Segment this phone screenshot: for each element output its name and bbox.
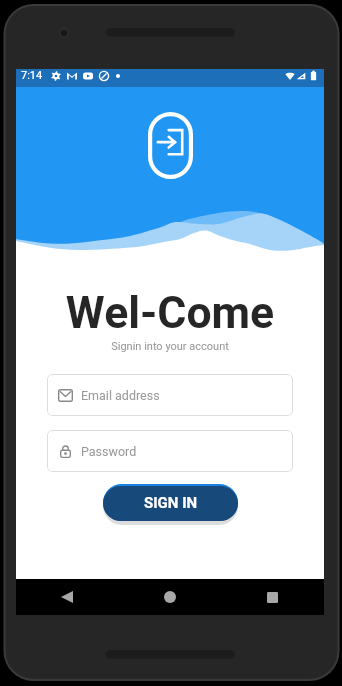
button[interactable]: Recent apps bbox=[221, 579, 324, 615]
staticText: Email address bbox=[81, 388, 160, 403]
staticText: 7:14 bbox=[21, 69, 43, 82]
staticText: Wel-Come bbox=[16, 287, 324, 339]
staticText: Signin into your account bbox=[16, 340, 324, 353]
button[interactable]: Home bbox=[118, 579, 221, 615]
staticText: Password bbox=[81, 444, 137, 459]
button[interactable]: SIGN IN bbox=[103, 484, 238, 521]
button[interactable]: Back bbox=[16, 579, 118, 615]
button[interactable]: Email address bbox=[47, 374, 293, 416]
staticText: SIGN IN bbox=[144, 494, 198, 512]
button[interactable]: Password bbox=[47, 430, 293, 472]
